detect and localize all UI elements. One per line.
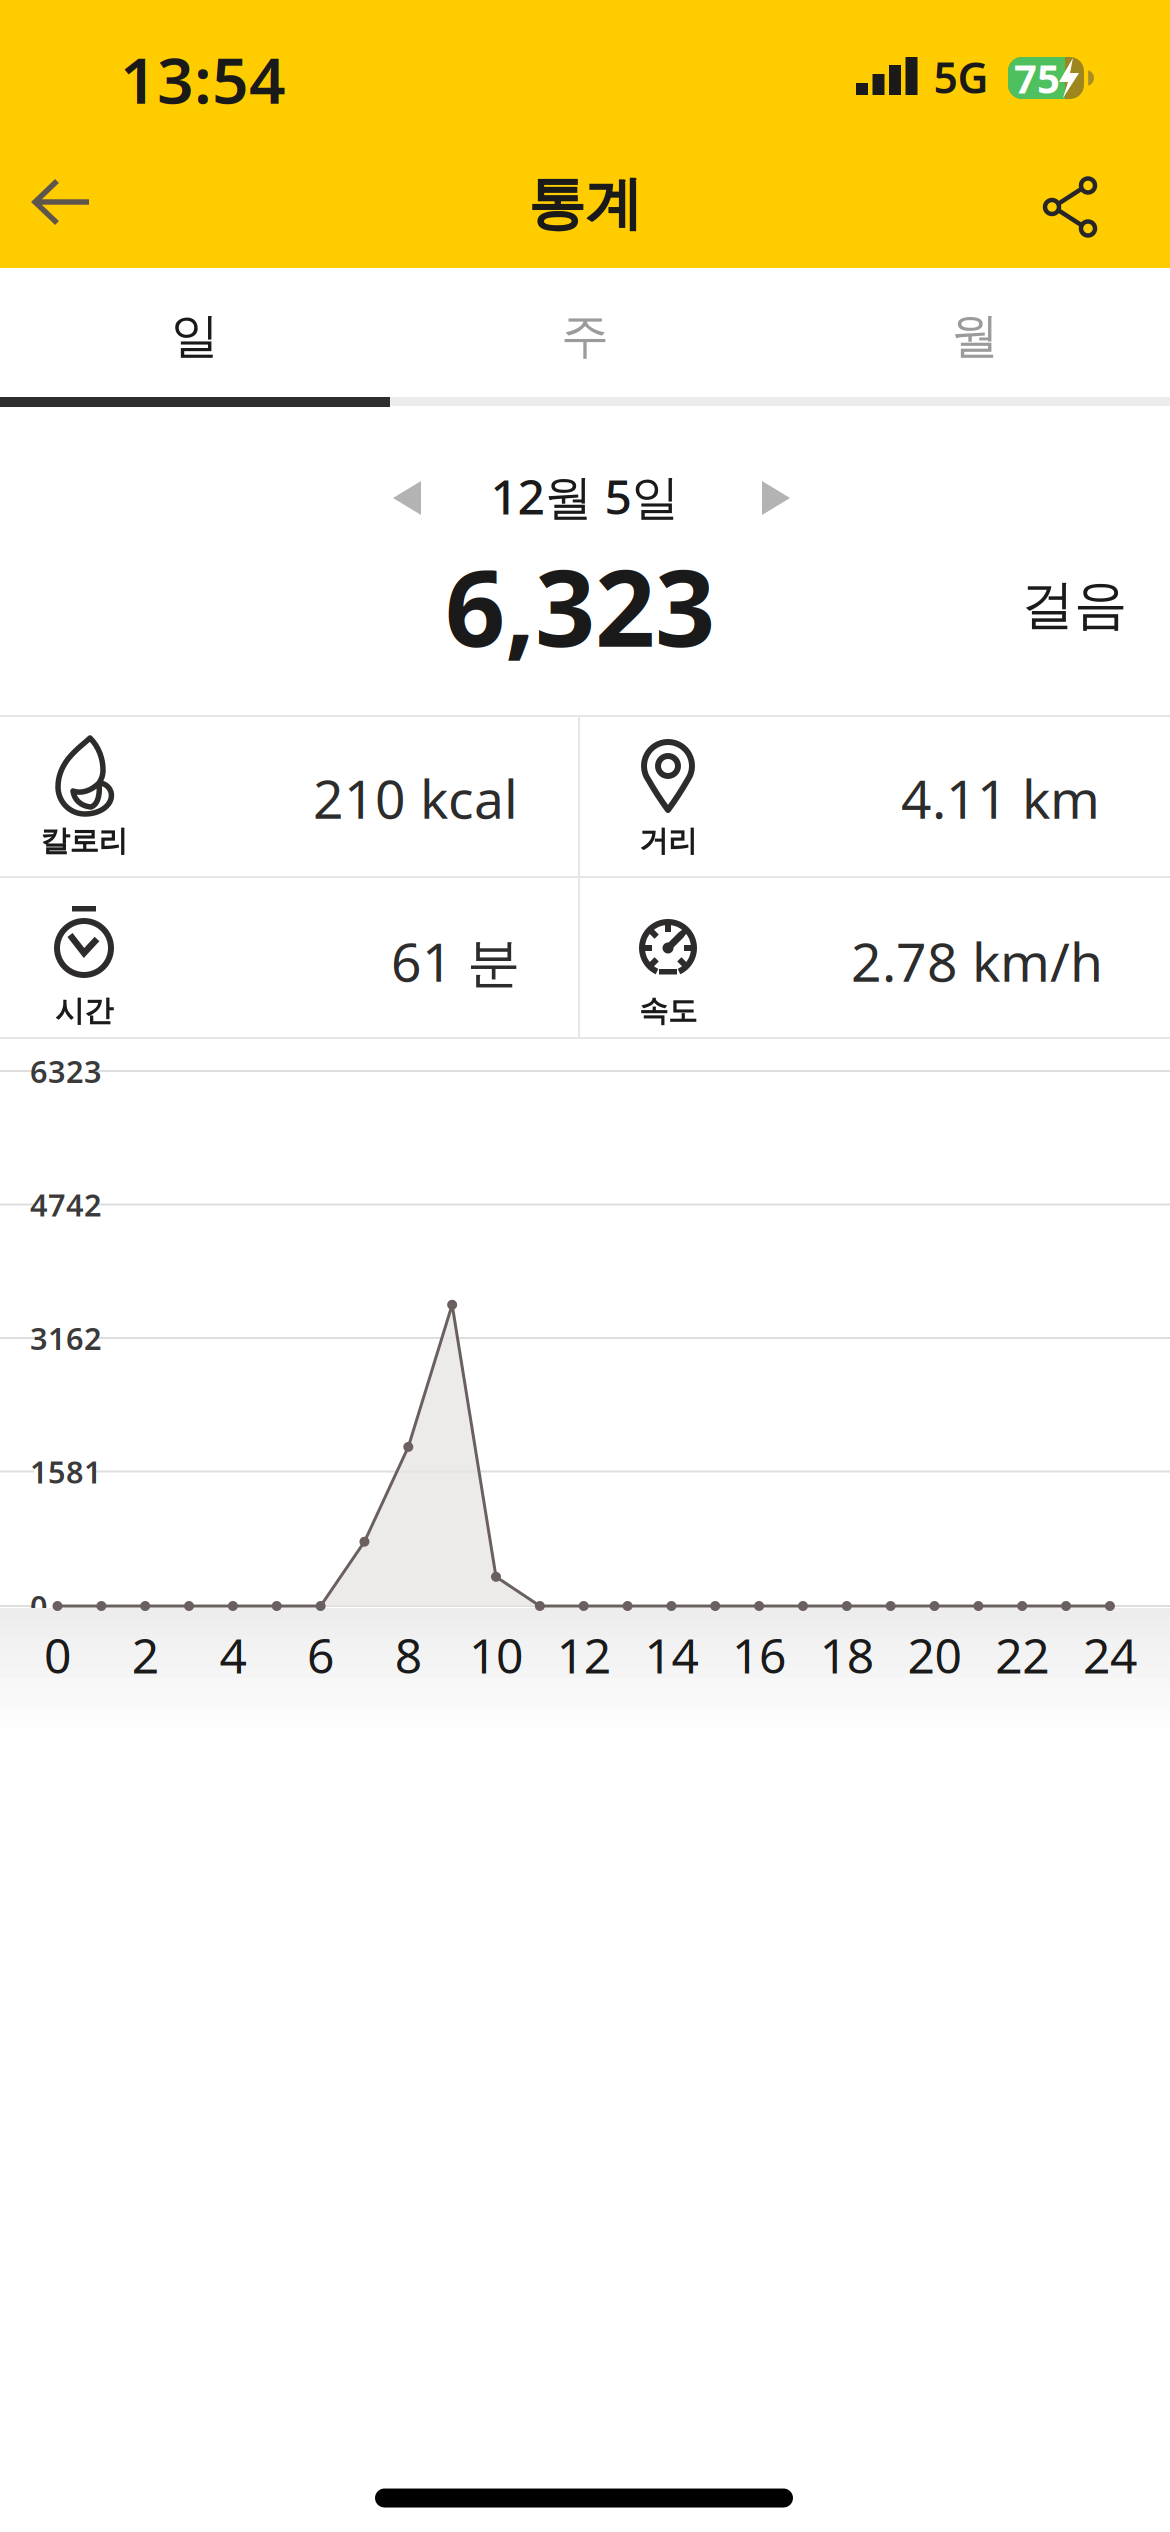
button[interactable]: 주 bbox=[390, 290, 780, 382]
button[interactable]: Next day bbox=[762, 481, 790, 515]
staticText: 24 bbox=[1083, 1623, 1137, 1687]
button[interactable]: Share bbox=[1046, 182, 1102, 232]
staticText: 0 bbox=[30, 1586, 48, 1626]
staticText: 시간 bbox=[55, 993, 113, 1029]
staticText: 12 bbox=[557, 1623, 611, 1687]
staticText: 6 bbox=[307, 1623, 334, 1687]
staticText: 걸음 bbox=[1021, 572, 1127, 638]
staticText: 10 bbox=[469, 1623, 523, 1687]
staticText: 월 bbox=[951, 306, 999, 365]
button[interactable]: Back bbox=[31, 181, 93, 225]
staticText: 61 분 bbox=[391, 926, 520, 996]
staticText: 4.11 km bbox=[901, 763, 1100, 833]
staticText: 0 bbox=[44, 1623, 71, 1687]
staticText: 1581 bbox=[30, 1451, 102, 1492]
staticText: 5G bbox=[933, 49, 988, 105]
staticText: 6323 bbox=[30, 1051, 102, 1091]
staticText: 20 bbox=[907, 1623, 961, 1687]
staticText: 2.78 km/h bbox=[851, 926, 1103, 996]
button[interactable]: 월 bbox=[780, 290, 1170, 382]
staticText: 8 bbox=[395, 1623, 422, 1687]
staticText: 4 bbox=[219, 1623, 246, 1687]
staticText: 22 bbox=[995, 1623, 1049, 1687]
staticText: 2 bbox=[132, 1623, 159, 1687]
staticText: 속도 bbox=[639, 993, 697, 1029]
button[interactable]: Previous day bbox=[393, 481, 421, 515]
staticText: 16 bbox=[732, 1623, 786, 1687]
staticText: 6,323 bbox=[445, 536, 715, 676]
staticText: 75 bbox=[1014, 51, 1060, 104]
staticText: 주 bbox=[561, 306, 609, 365]
staticText: 3162 bbox=[30, 1318, 102, 1358]
staticText: 210 kcal bbox=[313, 763, 518, 833]
staticText: 12월 5일 bbox=[490, 464, 679, 528]
staticText: 거리 bbox=[639, 823, 697, 859]
staticText: 일 bbox=[171, 306, 219, 365]
staticText: 통계 bbox=[528, 169, 642, 239]
staticText: 칼로리 bbox=[40, 823, 127, 859]
staticText: 18 bbox=[820, 1623, 874, 1687]
staticText: 4742 bbox=[30, 1184, 102, 1225]
staticText: 14 bbox=[644, 1623, 698, 1687]
staticText: 13:54 bbox=[120, 36, 286, 121]
button[interactable]: 일 bbox=[0, 290, 390, 382]
